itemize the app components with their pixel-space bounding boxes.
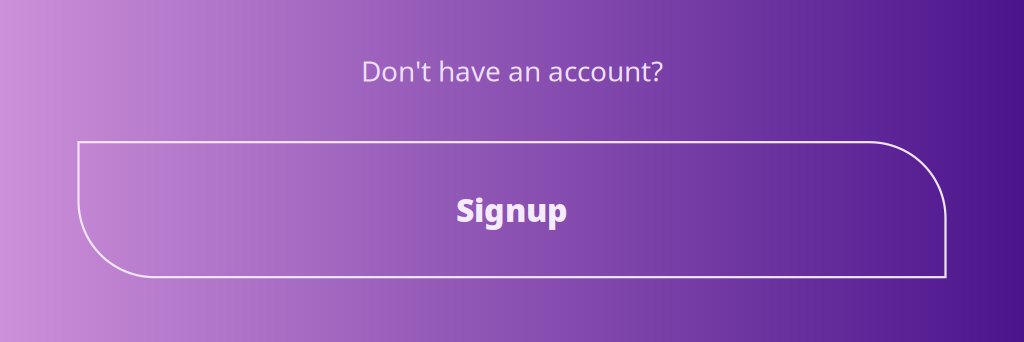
staticText: Signup xyxy=(456,188,568,231)
staticText: Don't have an account? xyxy=(361,52,663,89)
button[interactable]: Signup xyxy=(78,142,945,277)
